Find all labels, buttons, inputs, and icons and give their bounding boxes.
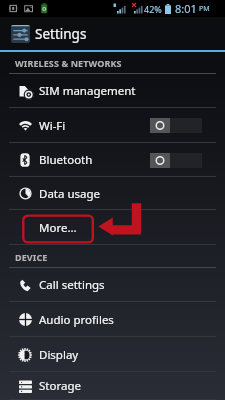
other: Settings app icon xyxy=(11,25,30,43)
staticText: More… xyxy=(39,220,77,236)
staticText: WIRELESS & NETWORKS xyxy=(15,57,122,69)
staticText: DEVICE xyxy=(15,251,48,263)
button[interactable]: Wi-Fi xyxy=(0,108,225,143)
staticText: Data usage xyxy=(39,186,101,202)
button[interactable]: Audio profiles xyxy=(0,302,225,337)
staticText: SIM management xyxy=(39,83,136,99)
staticText: Audio profiles xyxy=(39,312,114,328)
button[interactable]: Settings app icon xyxy=(0,17,225,50)
staticText: Settings xyxy=(35,25,87,43)
button[interactable]: Storage xyxy=(0,372,225,400)
button[interactable]: More… xyxy=(0,210,225,245)
button[interactable]: Data usage xyxy=(0,177,225,210)
button[interactable]: Display xyxy=(0,337,225,372)
staticText: PM xyxy=(199,4,210,14)
staticText: Call settings xyxy=(39,277,105,293)
staticText: Storage xyxy=(39,378,81,394)
staticText: 42% xyxy=(144,3,162,15)
staticText: Wi-Fi xyxy=(39,118,66,134)
staticText: Display xyxy=(39,347,79,363)
staticText: 8:01 xyxy=(175,1,197,16)
button[interactable]: SIM management xyxy=(0,74,225,108)
button[interactable]: Bluetooth xyxy=(0,143,225,177)
staticText: Bluetooth xyxy=(39,152,93,168)
button[interactable]: Call settings xyxy=(0,268,225,302)
